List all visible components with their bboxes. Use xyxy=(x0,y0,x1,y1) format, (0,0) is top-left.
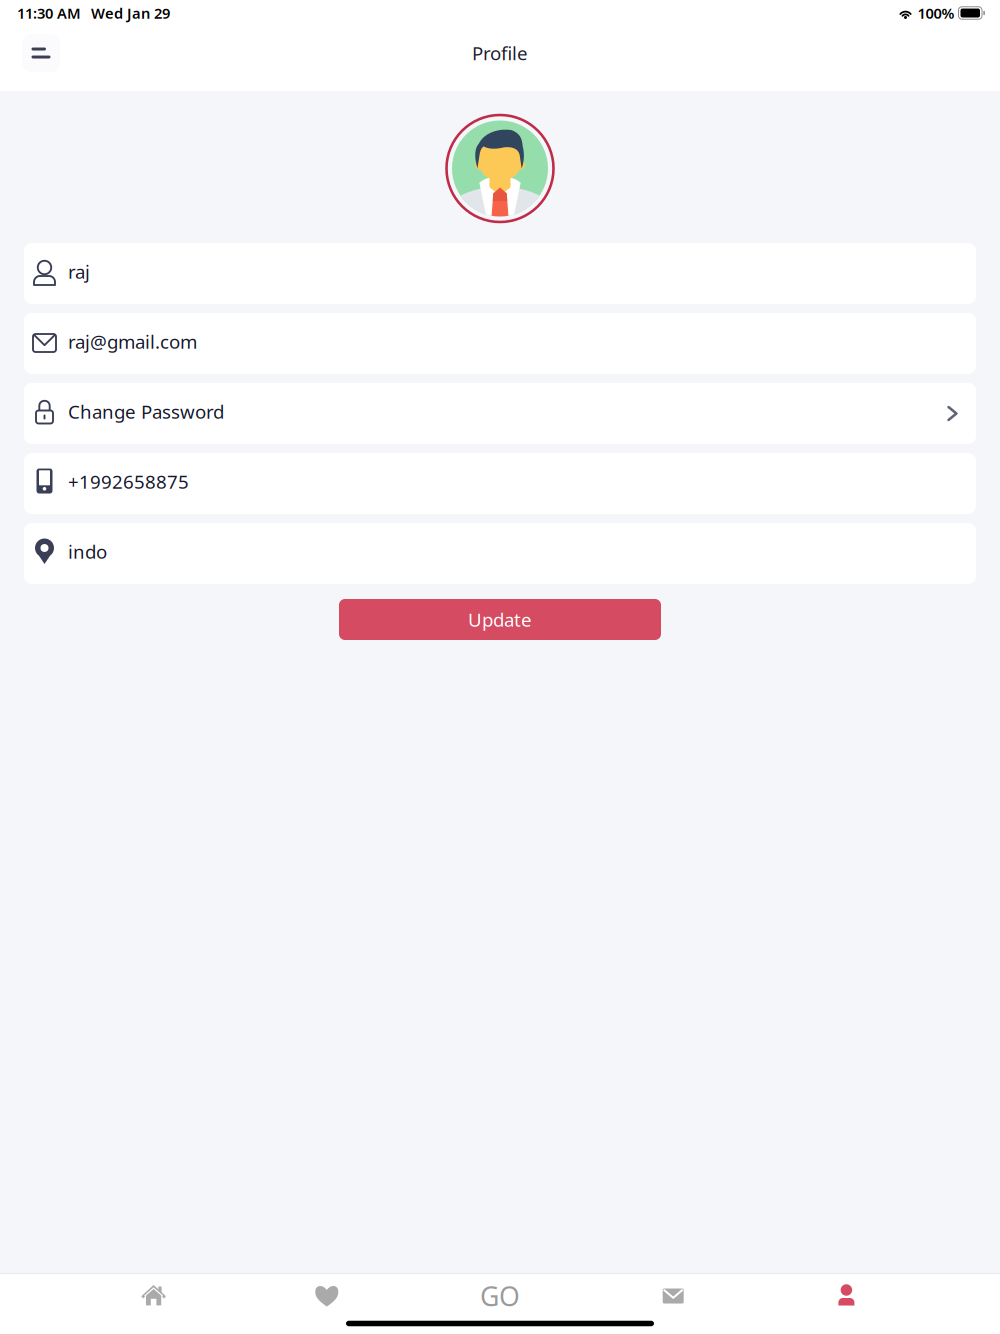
staticText: GO xyxy=(480,1278,520,1314)
staticText: +1992658875 xyxy=(68,469,189,494)
button[interactable]: raj@gmail.com xyxy=(24,313,976,374)
button[interactable]: Home xyxy=(67,1278,240,1314)
button[interactable]: Menu xyxy=(22,34,60,72)
staticText: 100% xyxy=(917,3,954,23)
staticText: Profile xyxy=(472,41,528,65)
button[interactable]: Messages xyxy=(587,1278,760,1314)
staticText: Change Password xyxy=(68,399,224,424)
staticText: Wed Jan 29 xyxy=(91,3,170,23)
button[interactable]: raj xyxy=(24,243,976,304)
staticText: Update xyxy=(468,607,532,632)
staticText: indo xyxy=(68,539,107,564)
button[interactable]: indo xyxy=(24,523,976,584)
button[interactable]: Favourites xyxy=(240,1278,413,1314)
button[interactable]: Change Password xyxy=(24,383,976,444)
staticText: raj@gmail.com xyxy=(68,329,197,354)
button[interactable]: Profile xyxy=(760,1278,933,1314)
staticText: 11:30 AM xyxy=(17,3,81,23)
button[interactable]: Update xyxy=(339,599,661,640)
staticText: raj xyxy=(68,259,90,284)
button[interactable]: Go xyxy=(413,1278,587,1314)
button[interactable]: +1992658875 xyxy=(24,453,976,514)
